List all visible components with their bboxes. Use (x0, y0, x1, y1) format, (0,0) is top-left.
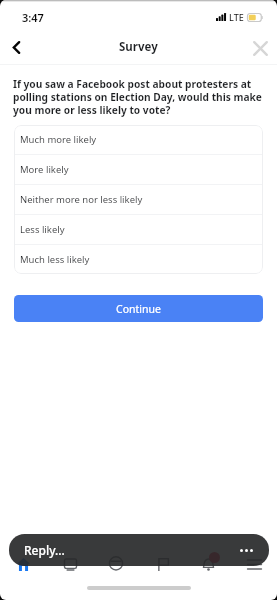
staticText: LTE (229, 11, 244, 23)
button[interactable]: Groups (139, 553, 185, 575)
button[interactable]: Notifications (185, 553, 231, 575)
button[interactable]: Reply... (9, 534, 269, 566)
button[interactable]: Much less likely (14, 245, 263, 274)
button[interactable]: Menu (231, 553, 277, 575)
staticText: If you saw a Facebook post about protest… (13, 77, 263, 117)
button[interactable]: Watch (47, 553, 93, 575)
button[interactable]: More likely (14, 155, 263, 184)
staticText: Continue (116, 302, 161, 316)
button[interactable]: Much more likely (14, 125, 263, 154)
button[interactable]: Less likely (14, 215, 263, 244)
button[interactable]: Back (4, 35, 28, 59)
staticText: Neither more nor less likely (20, 193, 143, 206)
staticText: Reply... (24, 542, 65, 558)
staticText: More likely (20, 163, 69, 176)
staticText: Much less likely (20, 253, 90, 266)
button[interactable]: Close (249, 37, 271, 59)
button[interactable]: Marketplace (93, 553, 139, 575)
button[interactable]: Continue (14, 295, 263, 322)
staticText: Less likely (20, 223, 65, 236)
button[interactable]: Neither more nor less likely (14, 185, 263, 214)
staticText: 3:47 (22, 10, 44, 25)
staticText: Survey (119, 39, 158, 55)
staticText: Much more likely (20, 133, 97, 146)
button[interactable]: Home (0, 553, 47, 575)
